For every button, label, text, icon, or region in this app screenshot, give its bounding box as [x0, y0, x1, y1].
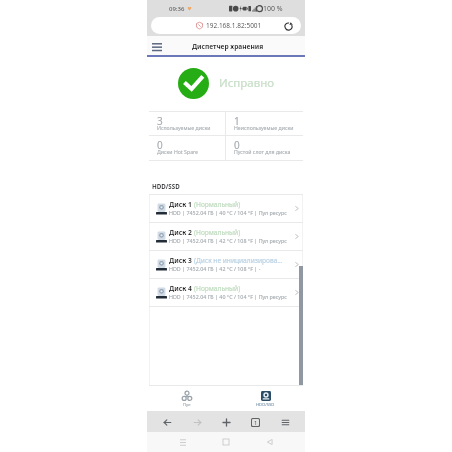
- button[interactable]: More options: [276, 413, 294, 431]
- staticText: Диск 1: [169, 200, 192, 209]
- staticText: Исправно: [219, 75, 275, 91]
- button[interactable]: Диск 4: [149, 279, 303, 306]
- staticText: 100 %: [263, 4, 283, 14]
- staticText: HDD | 7452.04 ГБ | 42 °C / 108 °F | Пул …: [169, 237, 287, 244]
- staticText: Диск 2: [169, 228, 192, 237]
- button[interactable]: HDD/SSD: [226, 386, 305, 411]
- staticText: HDD | 7452.04 ГБ | 42 °C / 108 °F | -: [169, 265, 261, 272]
- staticText: 1: [234, 114, 240, 128]
- button[interactable]: 192.168.1.82:5001: [151, 17, 301, 34]
- staticText: 09:36: [169, 5, 185, 13]
- staticText: Диск 4: [169, 284, 192, 293]
- staticText: 1: [254, 419, 258, 426]
- staticText: Диски Hot Spare: [157, 148, 199, 155]
- button[interactable]: New tab: [217, 413, 235, 431]
- button[interactable]: Tabs: [246, 413, 264, 431]
- button[interactable]: Диск 2: [149, 223, 303, 250]
- staticText: 192.168.1.82:5001: [206, 21, 262, 30]
- staticText: Пул: [183, 402, 191, 408]
- staticText: (Нормальный): [194, 284, 241, 293]
- button[interactable]: Menu: [148, 38, 166, 56]
- staticText: Диспетчер хранения: [192, 42, 264, 51]
- staticText: HDD/SSD: [256, 402, 275, 408]
- staticText: Используемые диски: [157, 124, 211, 131]
- staticText: HDD | 7452.04 ГБ | 40 °C / 104 °F | Пул …: [169, 209, 287, 216]
- button[interactable]: 0: [226, 136, 303, 160]
- staticText: Диск 3: [169, 256, 192, 265]
- staticText: HDD | 7452.04 ГБ | 40 °C / 104 °F | Пул …: [169, 293, 287, 300]
- button[interactable]: Reload: [282, 20, 295, 33]
- staticText: 0: [157, 138, 163, 152]
- button[interactable]: Диск 3: [149, 251, 303, 278]
- button[interactable]: 3: [149, 112, 225, 135]
- button[interactable]: 1: [226, 112, 303, 135]
- button[interactable]: Home: [218, 434, 234, 450]
- staticText: 3: [157, 114, 163, 128]
- button[interactable]: Forward: [188, 413, 206, 431]
- staticText: (Нормальный): [194, 228, 241, 237]
- staticText: 0: [234, 138, 240, 152]
- button[interactable]: Back: [158, 413, 176, 431]
- button[interactable]: Пул: [147, 386, 226, 411]
- button[interactable]: Back: [262, 434, 278, 450]
- button[interactable]: Recents: [175, 434, 191, 450]
- button[interactable]: 0: [149, 136, 225, 160]
- button[interactable]: Диск 1: [149, 195, 303, 222]
- staticText: HDD/SSD: [152, 182, 180, 190]
- staticText: (Нормальный): [194, 200, 241, 209]
- staticText: (Диск не инициализирова…: [194, 256, 283, 265]
- staticText: Неиспользуемые диски: [234, 124, 294, 131]
- staticText: Пустой слот для диска: [234, 148, 291, 155]
